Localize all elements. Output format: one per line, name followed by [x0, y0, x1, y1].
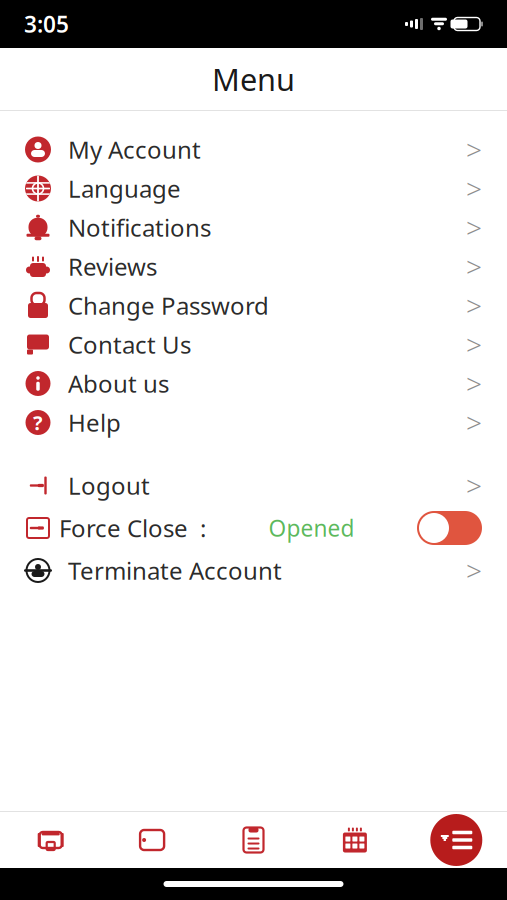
- button[interactable]: Offers: [101, 812, 203, 868]
- staticText: ?: [33, 409, 43, 436]
- staticText: Force Close :: [59, 512, 206, 544]
- button[interactable]: About us: [0, 364, 507, 403]
- staticText: >: [466, 131, 482, 168]
- button[interactable]: Menu: [406, 812, 507, 868]
- staticText: >: [466, 552, 482, 589]
- staticText: >: [466, 326, 482, 363]
- staticText: Contact Us: [68, 329, 191, 360]
- staticText: Opened: [268, 513, 354, 543]
- button[interactable]: Logout: [0, 466, 507, 505]
- staticText: >: [466, 209, 482, 246]
- button[interactable]: Reviews: [0, 247, 507, 286]
- staticText: Terminate Account: [68, 555, 282, 586]
- button[interactable]: Contact Us: [0, 325, 507, 364]
- staticText: >: [466, 170, 482, 207]
- staticText: >: [466, 467, 482, 504]
- staticText: Change Password: [68, 290, 269, 321]
- button[interactable]: Home: [0, 812, 101, 868]
- button[interactable]: Change Password: [0, 286, 507, 325]
- button[interactable]: My Account: [0, 130, 507, 169]
- staticText: >: [466, 287, 482, 324]
- staticText: >: [466, 248, 482, 285]
- staticText: My Account: [68, 134, 201, 165]
- staticText: >: [466, 365, 482, 402]
- staticText: Menu: [212, 59, 295, 99]
- button[interactable]: Calendar: [304, 812, 406, 868]
- button[interactable]: ?: [0, 403, 507, 442]
- staticText: Help: [68, 407, 121, 438]
- button[interactable]: Force Close :: [0, 505, 507, 551]
- button[interactable]: Orders: [203, 812, 304, 868]
- staticText: Reviews: [68, 251, 157, 282]
- staticText: 3:05: [24, 9, 69, 39]
- staticText: Language: [68, 173, 181, 204]
- staticText: About us: [68, 368, 169, 399]
- staticText: Notifications: [68, 212, 211, 243]
- staticText: >: [466, 404, 482, 441]
- staticText: Logout: [68, 470, 150, 501]
- button[interactable]: Terminate Account: [0, 551, 507, 590]
- button[interactable]: Notifications: [0, 208, 507, 247]
- button[interactable]: Language: [0, 169, 507, 208]
